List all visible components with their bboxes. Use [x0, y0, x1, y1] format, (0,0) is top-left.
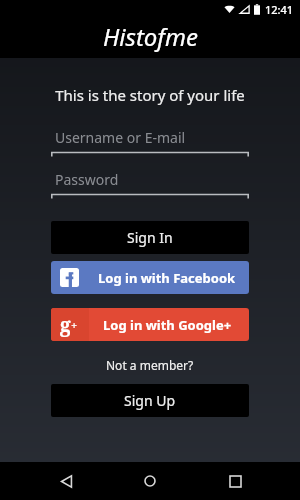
button[interactable]: Back — [47, 462, 85, 500]
button[interactable]: Log in with Facebook — [51, 261, 249, 294]
button[interactable]: Sign Up — [51, 384, 249, 417]
staticText: Sign In — [127, 228, 173, 247]
staticText: + — [71, 318, 78, 333]
staticText: Log in with Google+ — [103, 316, 232, 334]
button[interactable]: Home — [131, 462, 169, 500]
button[interactable]: g — [51, 308, 249, 341]
staticText: Histofme — [103, 20, 198, 53]
button[interactable]: Password — [51, 170, 249, 199]
staticText: Username or E-mail — [55, 128, 186, 147]
staticText: This is the story of your life — [55, 85, 245, 105]
button[interactable]: Sign In — [51, 221, 249, 254]
button[interactable]: Recents — [216, 462, 254, 500]
staticText: g — [60, 312, 71, 338]
button[interactable]: Username or E-mail — [51, 128, 249, 157]
staticText: Sign Up — [124, 391, 176, 410]
staticText: Log in with Facebook — [98, 269, 236, 287]
staticText: Password — [55, 170, 119, 189]
staticText: Not a member? — [106, 357, 194, 373]
staticText: 12:41 — [265, 2, 294, 17]
